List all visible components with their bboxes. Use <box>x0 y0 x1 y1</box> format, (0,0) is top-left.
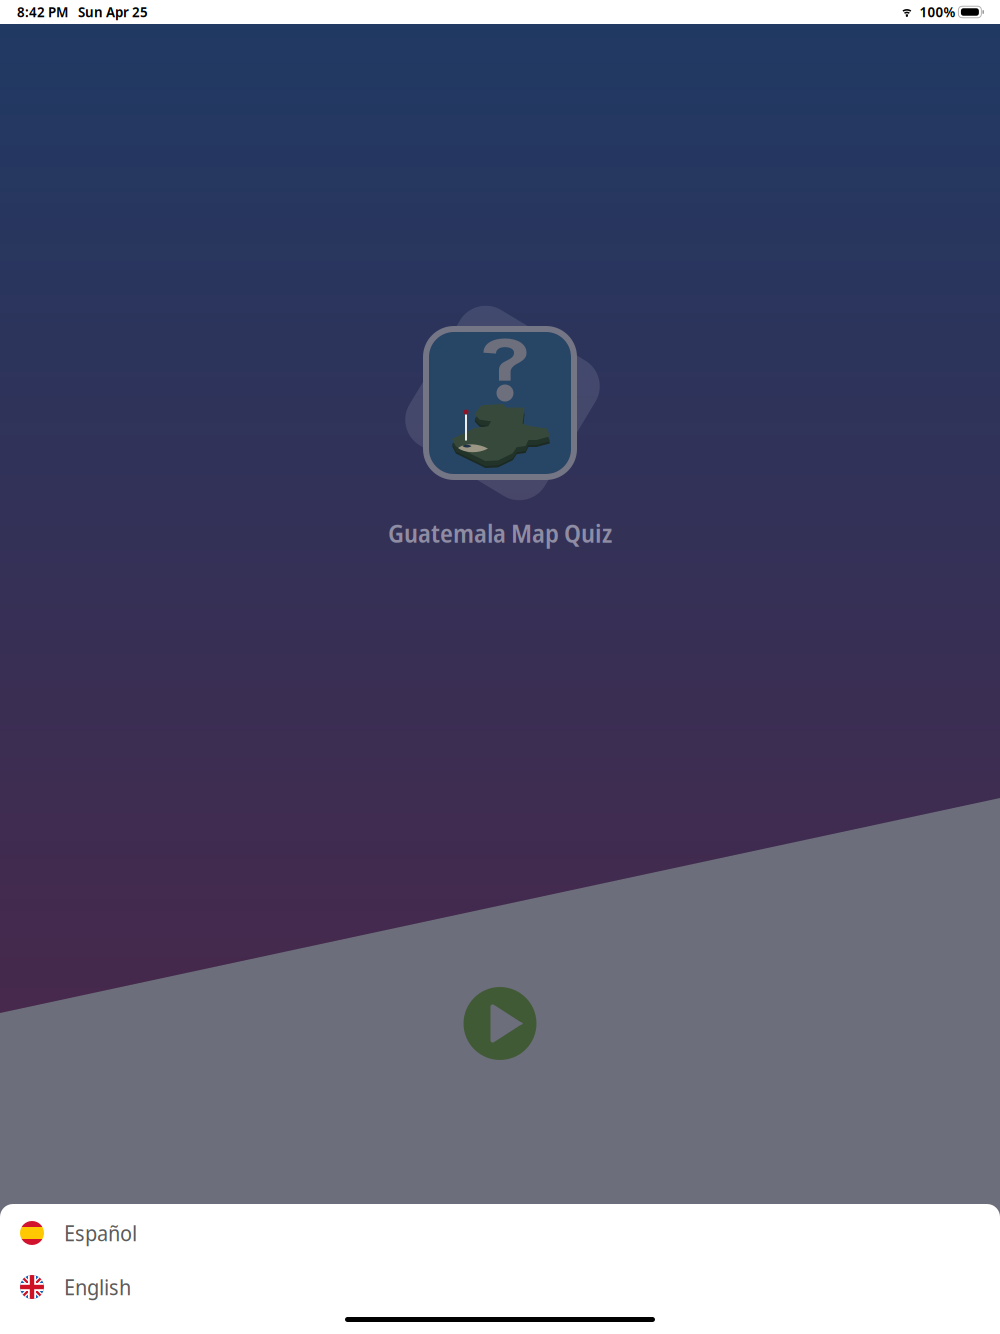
staticText: Guatemala Map Quiz <box>388 516 612 550</box>
button[interactable]: English <box>0 1260 1000 1314</box>
staticText: 100% <box>919 3 955 21</box>
button[interactable]: Play <box>463 987 536 1060</box>
staticText: 8:42 PM <box>17 3 68 21</box>
staticText: Español <box>64 1218 137 1248</box>
staticText: Sun Apr 25 <box>78 3 148 21</box>
staticText: English <box>64 1272 131 1302</box>
button[interactable]: Español <box>0 1206 1000 1260</box>
